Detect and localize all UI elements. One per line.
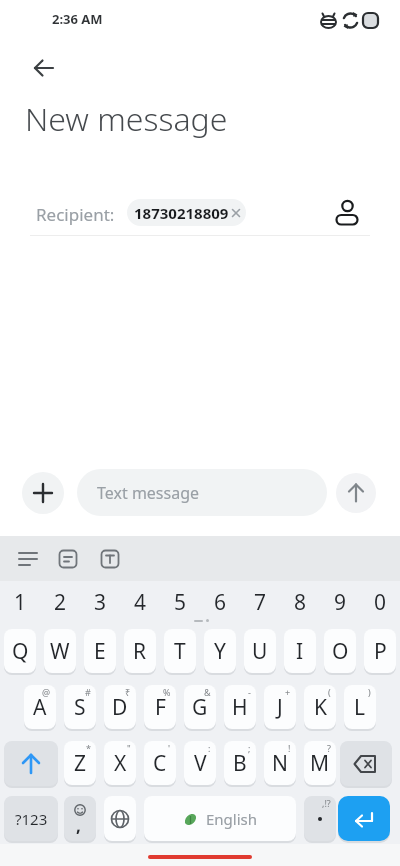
button[interactable]: M <box>304 741 336 785</box>
button[interactable]: X <box>104 741 136 785</box>
staticText: ; <box>248 742 251 754</box>
staticText: New message <box>25 97 228 141</box>
staticText: D <box>112 693 128 722</box>
button[interactable]: P <box>364 629 396 673</box>
staticText: & <box>204 686 211 698</box>
button[interactable]: I <box>284 629 316 673</box>
button[interactable]: B <box>224 741 256 785</box>
staticText: ,!? <box>322 797 331 809</box>
staticText: X <box>114 749 127 778</box>
staticText: ' <box>168 742 171 754</box>
button[interactable] <box>22 472 64 514</box>
staticText: ( <box>328 686 331 698</box>
button[interactable]: W <box>44 629 76 673</box>
button[interactable]: 1 <box>4 587 36 617</box>
button[interactable]: O <box>324 629 356 673</box>
button[interactable]: English <box>144 796 296 841</box>
staticText: ?123 <box>15 809 48 829</box>
button[interactable]: Z <box>64 741 96 785</box>
button[interactable]: K <box>304 685 336 729</box>
staticText: ₹ <box>125 686 131 698</box>
button[interactable] <box>336 473 376 513</box>
staticText: A <box>33 693 47 722</box>
staticText: L <box>354 693 366 722</box>
staticText: # <box>85 686 91 698</box>
button[interactable]: 18730218809 <box>127 199 246 226</box>
button[interactable]: U <box>244 629 276 673</box>
button[interactable] <box>96 545 124 573</box>
button[interactable]: 5 <box>164 587 196 617</box>
button[interactable]: E <box>84 629 116 673</box>
button[interactable]: C <box>144 741 176 785</box>
button[interactable] <box>14 545 42 573</box>
button[interactable] <box>28 52 60 84</box>
button[interactable] <box>104 796 136 841</box>
staticText: F <box>155 693 166 722</box>
staticText: N <box>272 749 288 778</box>
button[interactable]: D <box>104 685 136 729</box>
button[interactable]: L <box>344 685 376 729</box>
staticText: % <box>163 686 171 698</box>
button[interactable]: 9 <box>324 587 356 617</box>
button[interactable] <box>338 796 390 841</box>
staticText: , <box>76 814 81 837</box>
staticText: W <box>50 637 70 666</box>
staticText: P <box>374 637 387 666</box>
staticText: ) <box>368 686 371 698</box>
staticText: H <box>232 693 248 722</box>
button[interactable]: ,!? <box>304 796 336 841</box>
button[interactable]: Y <box>204 629 236 673</box>
staticText: 8 <box>294 588 307 617</box>
staticText: S <box>74 693 86 722</box>
button[interactable]: 4 <box>124 587 156 617</box>
staticText: Q <box>12 637 29 666</box>
button[interactable]: G <box>184 685 216 729</box>
button[interactable]: 6 <box>204 587 236 617</box>
staticText: 2 <box>54 588 67 617</box>
staticText: E <box>94 637 106 666</box>
staticText: 7 <box>254 588 267 617</box>
button[interactable]: F <box>144 685 176 729</box>
button[interactable]: ?123 <box>4 796 58 841</box>
button[interactable]: R <box>124 629 156 673</box>
staticText: Text message <box>97 482 200 504</box>
button[interactable]: V <box>184 741 216 785</box>
button[interactable] <box>4 741 58 786</box>
staticText: I <box>296 637 304 666</box>
staticText: @ <box>42 686 51 698</box>
staticText: V <box>194 749 207 778</box>
button[interactable]: 2 <box>44 587 76 617</box>
button[interactable]: T <box>164 629 196 673</box>
staticText: J <box>277 693 283 722</box>
staticText: Recipient: <box>36 203 115 226</box>
staticText: + <box>285 686 291 698</box>
staticText: R <box>133 637 147 666</box>
button[interactable]: 3 <box>84 587 116 617</box>
button[interactable]: 8 <box>284 587 316 617</box>
staticText: 1 <box>14 588 27 617</box>
button[interactable]: Q <box>4 629 36 673</box>
staticText: 0 <box>374 588 387 617</box>
staticText: K <box>314 693 327 722</box>
staticText: : <box>208 742 211 754</box>
button[interactable]: N <box>264 741 296 785</box>
button[interactable]: 7 <box>244 587 276 617</box>
button[interactable] <box>54 545 82 573</box>
staticText: 2:36 AM <box>52 10 103 28</box>
staticText: T <box>174 637 186 666</box>
button[interactable]: A <box>24 685 56 729</box>
staticText: English <box>206 809 258 829</box>
button[interactable]: S <box>64 685 96 729</box>
staticText: U <box>252 637 268 666</box>
staticText: B <box>233 749 247 778</box>
button[interactable]: H <box>224 685 256 729</box>
staticText: 9 <box>334 588 347 617</box>
button[interactable]: J <box>264 685 296 729</box>
button[interactable]: 0 <box>364 587 396 617</box>
button[interactable]: , <box>64 796 96 841</box>
button[interactable] <box>330 196 362 228</box>
button[interactable]: Text message <box>77 469 327 516</box>
button[interactable] <box>340 741 392 786</box>
staticText: - <box>248 686 251 698</box>
staticText: 3 <box>94 588 107 617</box>
